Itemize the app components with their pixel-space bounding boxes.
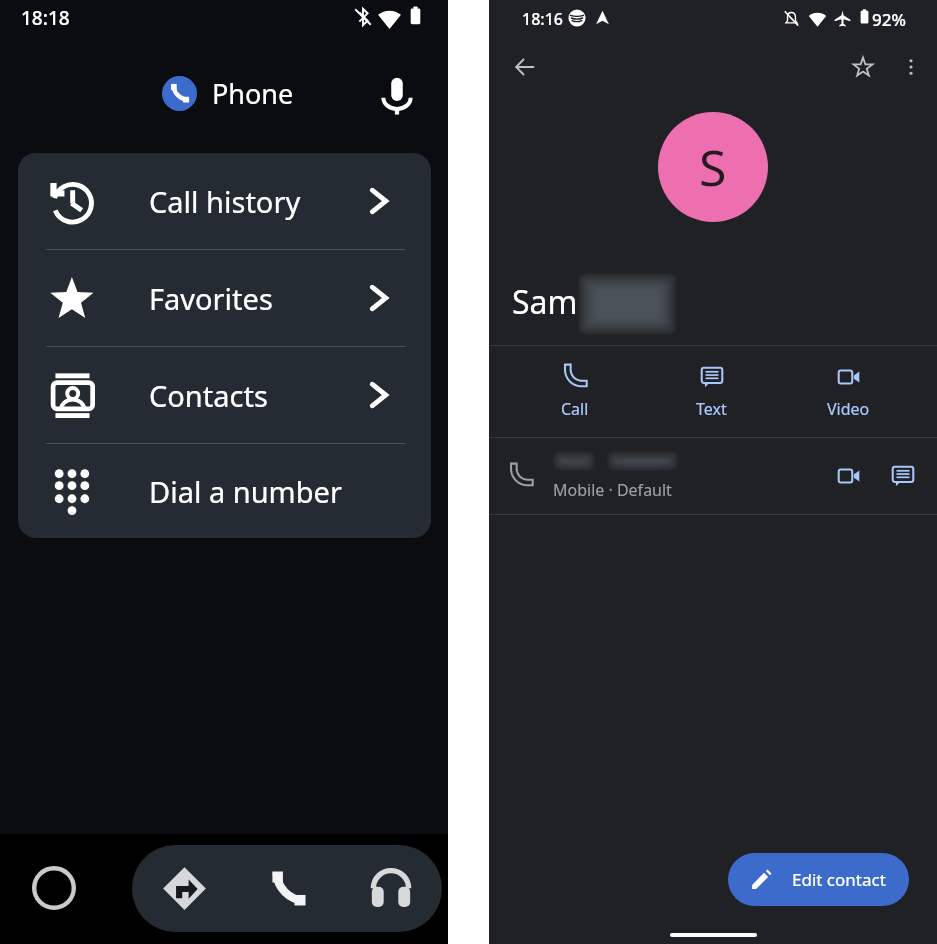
staticText: Dial a number — [149, 472, 342, 511]
button[interactable]: Favorites — [18, 250, 431, 346]
button[interactable]: Home — [30, 864, 78, 912]
button[interactable]: Favorite — [839, 43, 887, 91]
staticText: Contacts — [149, 376, 268, 415]
button[interactable]: Dial a number — [18, 444, 431, 538]
button[interactable]: Edit contact — [728, 853, 909, 906]
staticText: 18:18 — [21, 5, 70, 31]
button[interactable]: Contacts — [18, 347, 431, 443]
staticText: 18:16 — [522, 8, 563, 30]
staticText: Text — [696, 398, 727, 420]
staticText: Edit contact — [792, 868, 886, 891]
staticText: S — [699, 133, 727, 201]
button[interactable]: Phone — [236, 845, 339, 932]
staticText: Call history — [149, 182, 301, 221]
button[interactable]: More options — [887, 43, 935, 91]
staticText: Phone — [212, 75, 294, 112]
button[interactable]: Mobile · Default — [489, 438, 937, 514]
button[interactable]: Back — [501, 43, 549, 91]
button[interactable]: Text — [643, 346, 780, 437]
button[interactable]: Video — [780, 346, 917, 437]
staticText: Mobile · Default — [553, 479, 672, 501]
staticText: Call — [561, 398, 589, 420]
staticText: 92% — [872, 8, 906, 31]
button[interactable]: Media — [339, 845, 442, 932]
button[interactable]: Video call — [827, 454, 871, 498]
button[interactable]: Voice search — [373, 72, 421, 120]
button[interactable]: Call history — [18, 153, 431, 249]
button[interactable]: Navigation — [132, 845, 236, 932]
button[interactable]: Send message — [881, 454, 925, 498]
button[interactable]: Call — [506, 346, 643, 437]
staticText: Video — [827, 398, 870, 420]
staticText: Sam — [512, 280, 578, 324]
staticText: Favorites — [149, 279, 273, 318]
